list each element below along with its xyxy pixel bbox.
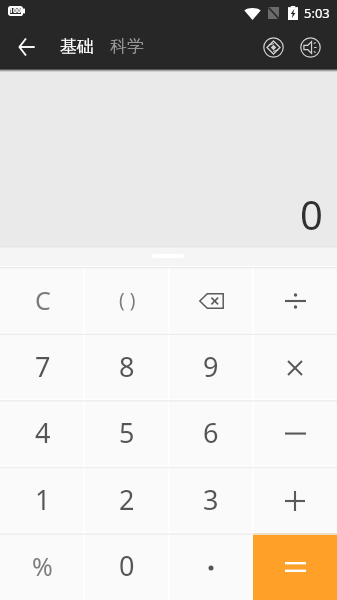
button[interactable]: 5 xyxy=(85,400,169,467)
staticText: 0 xyxy=(300,187,323,241)
button[interactable]: 2 xyxy=(85,467,169,534)
button[interactable]: Decimal point xyxy=(169,533,253,600)
button[interactable]: Sound xyxy=(296,33,324,61)
button[interactable]: Plus xyxy=(253,467,337,534)
staticText: 6 xyxy=(203,414,219,451)
staticText: 0 xyxy=(119,547,135,584)
button[interactable]: 9 xyxy=(169,334,253,401)
button[interactable]: Multiply xyxy=(253,334,337,401)
staticText: 基础 xyxy=(60,36,94,57)
staticText: ( ) xyxy=(119,287,136,313)
staticText: 5:03 xyxy=(304,4,330,22)
button[interactable]: Minus xyxy=(253,400,337,467)
button[interactable]: ( ) xyxy=(85,267,169,334)
button[interactable]: C xyxy=(0,267,85,334)
button[interactable]: Theme xyxy=(259,33,287,61)
staticText: 100 xyxy=(9,6,22,16)
button[interactable]: 7 xyxy=(0,334,85,401)
button[interactable]: Backspace xyxy=(169,267,253,334)
button[interactable]: % xyxy=(0,533,85,600)
staticText: 4 xyxy=(35,414,51,451)
button[interactable]: Back xyxy=(10,31,42,63)
staticText: 科学 xyxy=(110,36,144,57)
staticText: C xyxy=(35,283,51,317)
button[interactable]: 科学 xyxy=(110,31,144,62)
button[interactable]: 8 xyxy=(85,334,169,401)
staticText: % xyxy=(32,549,53,583)
staticText: 7 xyxy=(35,348,51,385)
staticText: 3 xyxy=(203,481,219,518)
staticText: 1 xyxy=(35,481,51,518)
button[interactable]: 6 xyxy=(169,400,253,467)
button[interactable]: Divide xyxy=(253,267,337,334)
button[interactable]: 1 xyxy=(0,467,85,534)
button[interactable]: 0 xyxy=(85,533,169,600)
button[interactable]: 基础 xyxy=(60,31,94,62)
button[interactable]: 4 xyxy=(0,400,85,467)
button[interactable]: Equals xyxy=(253,533,337,600)
staticText: 9 xyxy=(203,348,219,385)
staticText: 2 xyxy=(119,481,135,518)
button[interactable]: 3 xyxy=(169,467,253,534)
staticText: 8 xyxy=(119,348,135,385)
staticText: 5 xyxy=(119,414,135,451)
